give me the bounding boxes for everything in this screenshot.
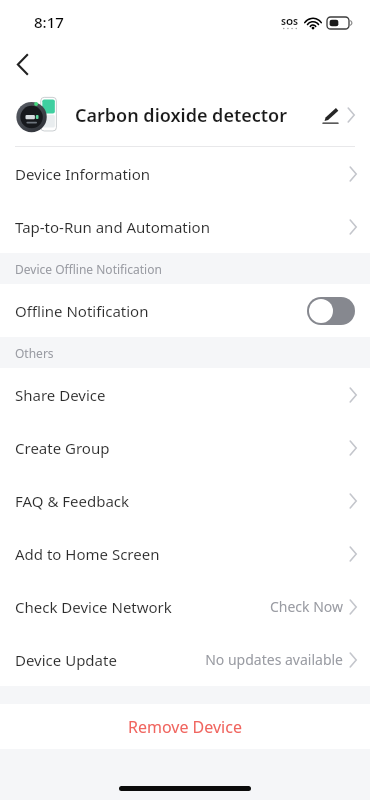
button[interactable]: Create Group xyxy=(0,421,370,474)
staticText: Offline Notification xyxy=(15,301,307,321)
button[interactable]: FAQ & Feedback xyxy=(0,474,370,527)
button[interactable]: Carbon dioxide detector xyxy=(0,84,370,146)
button[interactable]: Device Update xyxy=(0,633,370,686)
staticText: Create Group xyxy=(15,438,349,458)
staticText: Others xyxy=(15,345,54,361)
staticText: SOS xyxy=(281,15,299,27)
button[interactable]: Tap-to-Run and Automation xyxy=(0,200,370,253)
button[interactable]: Add to Home Screen xyxy=(0,527,370,580)
other: Offline Notification toggle, off xyxy=(307,297,355,325)
staticText: Check Now xyxy=(269,597,343,616)
button[interactable]: Share Device xyxy=(0,368,370,421)
other: Edit device name xyxy=(317,102,343,128)
button[interactable]: Back xyxy=(4,46,40,82)
button[interactable]: Device Information xyxy=(0,147,370,200)
staticText: Device Update xyxy=(15,650,205,670)
staticText: Share Device xyxy=(15,385,349,405)
button[interactable]: Check Device Network xyxy=(0,580,370,633)
staticText: Check Device Network xyxy=(15,597,269,617)
staticText: FAQ & Feedback xyxy=(15,491,349,511)
button[interactable]: Offline Notification xyxy=(0,284,370,337)
staticText: Carbon dioxide detector xyxy=(75,103,317,128)
staticText: 8:17 xyxy=(34,12,64,32)
staticText: No updates available xyxy=(205,650,343,669)
staticText: Add to Home Screen xyxy=(15,544,349,564)
button[interactable]: Remove Device xyxy=(0,704,370,749)
staticText: Device Information xyxy=(15,164,349,184)
staticText: Remove Device xyxy=(128,716,242,738)
staticText: Device Offline Notification xyxy=(15,261,162,277)
staticText: Tap-to-Run and Automation xyxy=(15,217,349,237)
